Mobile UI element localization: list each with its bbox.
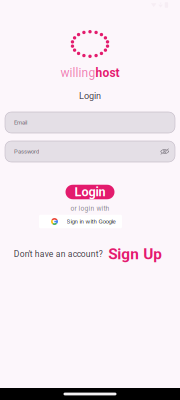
staticText: Sign in with Google — [66, 218, 115, 225]
button[interactable]: Sign in with Google — [39, 215, 122, 228]
staticText: host — [95, 66, 119, 80]
button[interactable]: Sign Up — [108, 245, 162, 263]
staticText: willing — [60, 66, 95, 80]
staticText: Login — [79, 91, 101, 101]
staticText: Login — [74, 185, 105, 199]
button[interactable]: Login — [65, 185, 114, 199]
staticText: Don't have an account? — [14, 249, 103, 259]
staticText: Email — [14, 119, 27, 126]
staticText: Password — [14, 148, 39, 155]
staticText: Sign Up — [108, 245, 162, 263]
staticText: or login with — [70, 205, 109, 212]
